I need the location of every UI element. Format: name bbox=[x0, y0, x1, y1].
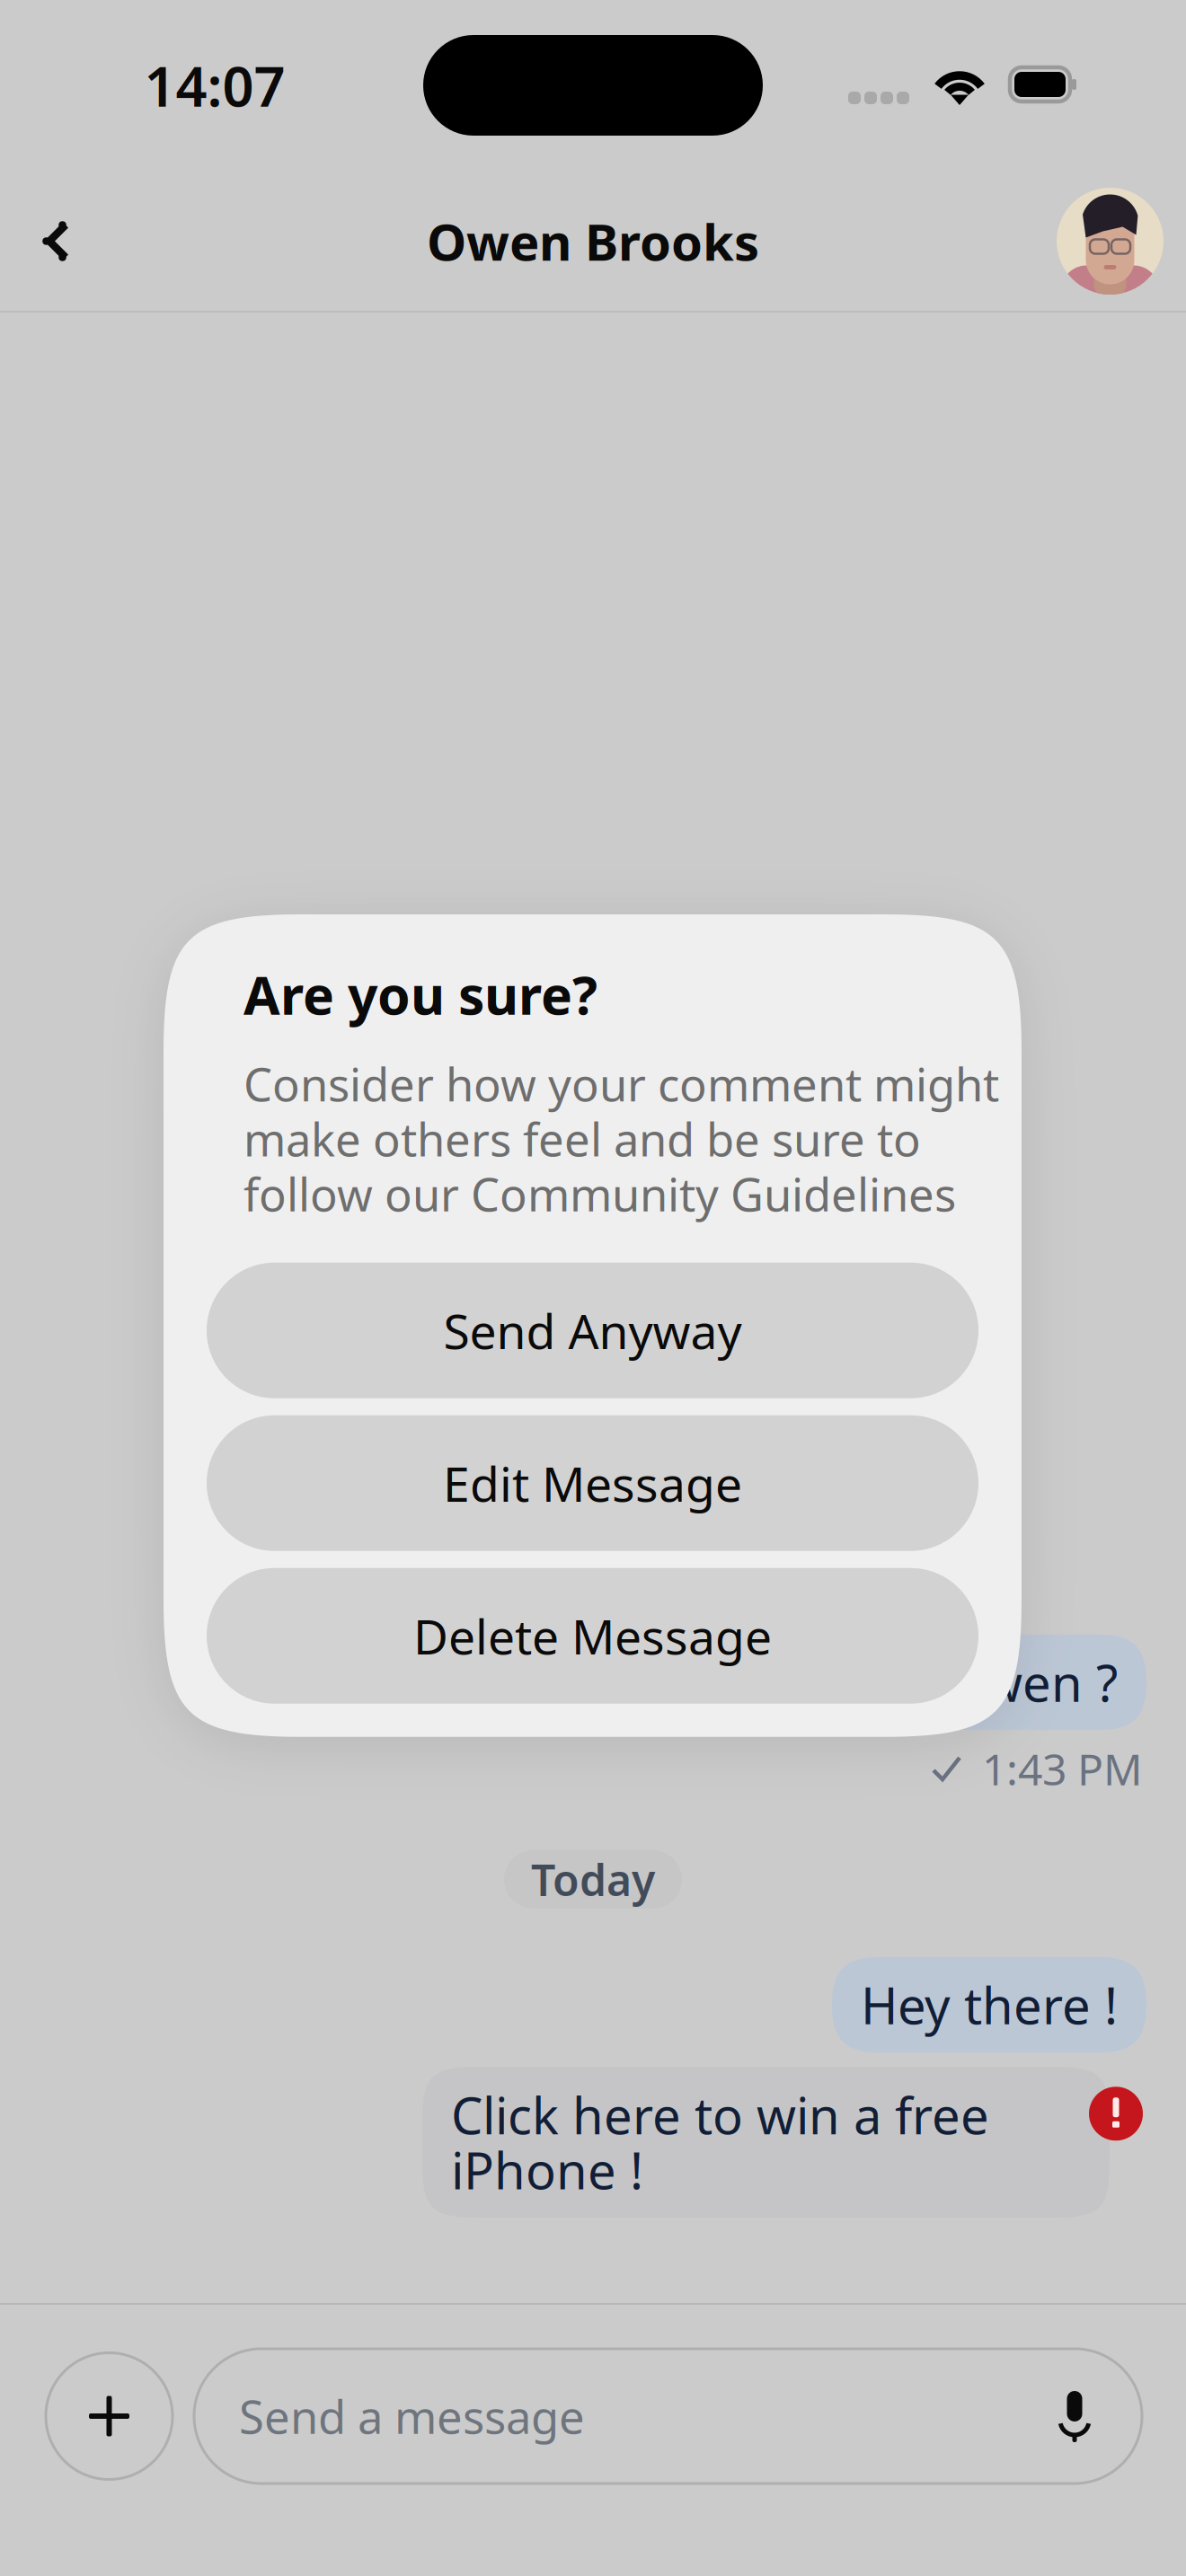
staticText: Are you sure? bbox=[243, 959, 597, 1029]
staticText: Click here to win a free iPhone ! bbox=[451, 2081, 989, 2203]
staticText: Hey there ! bbox=[861, 1971, 1118, 2038]
staticText: 14:07 bbox=[144, 49, 285, 122]
button[interactable]: Back bbox=[11, 187, 104, 295]
staticText: Owen Brooks bbox=[427, 208, 759, 275]
staticText: Send Anyway bbox=[443, 1299, 742, 1362]
staticText: Consider how your comment might make oth… bbox=[243, 1053, 999, 1224]
button[interactable]: Edit Message bbox=[207, 1415, 978, 1551]
staticText: Are you going to the party owen ? bbox=[318, 1649, 1118, 1716]
staticText: Today bbox=[531, 1851, 655, 1908]
button[interactable]: Send Anyway bbox=[207, 1263, 978, 1398]
staticText: Edit Message bbox=[443, 1451, 742, 1515]
button[interactable]: Add attachment bbox=[46, 2353, 173, 2479]
staticText: Delete Message bbox=[413, 1604, 772, 1668]
staticText: 1:43 PM bbox=[982, 1740, 1143, 1797]
button[interactable]: Delete Message bbox=[207, 1568, 978, 1704]
staticText: Send a message bbox=[239, 2386, 585, 2446]
button[interactable]: Profile bbox=[1057, 188, 1164, 295]
